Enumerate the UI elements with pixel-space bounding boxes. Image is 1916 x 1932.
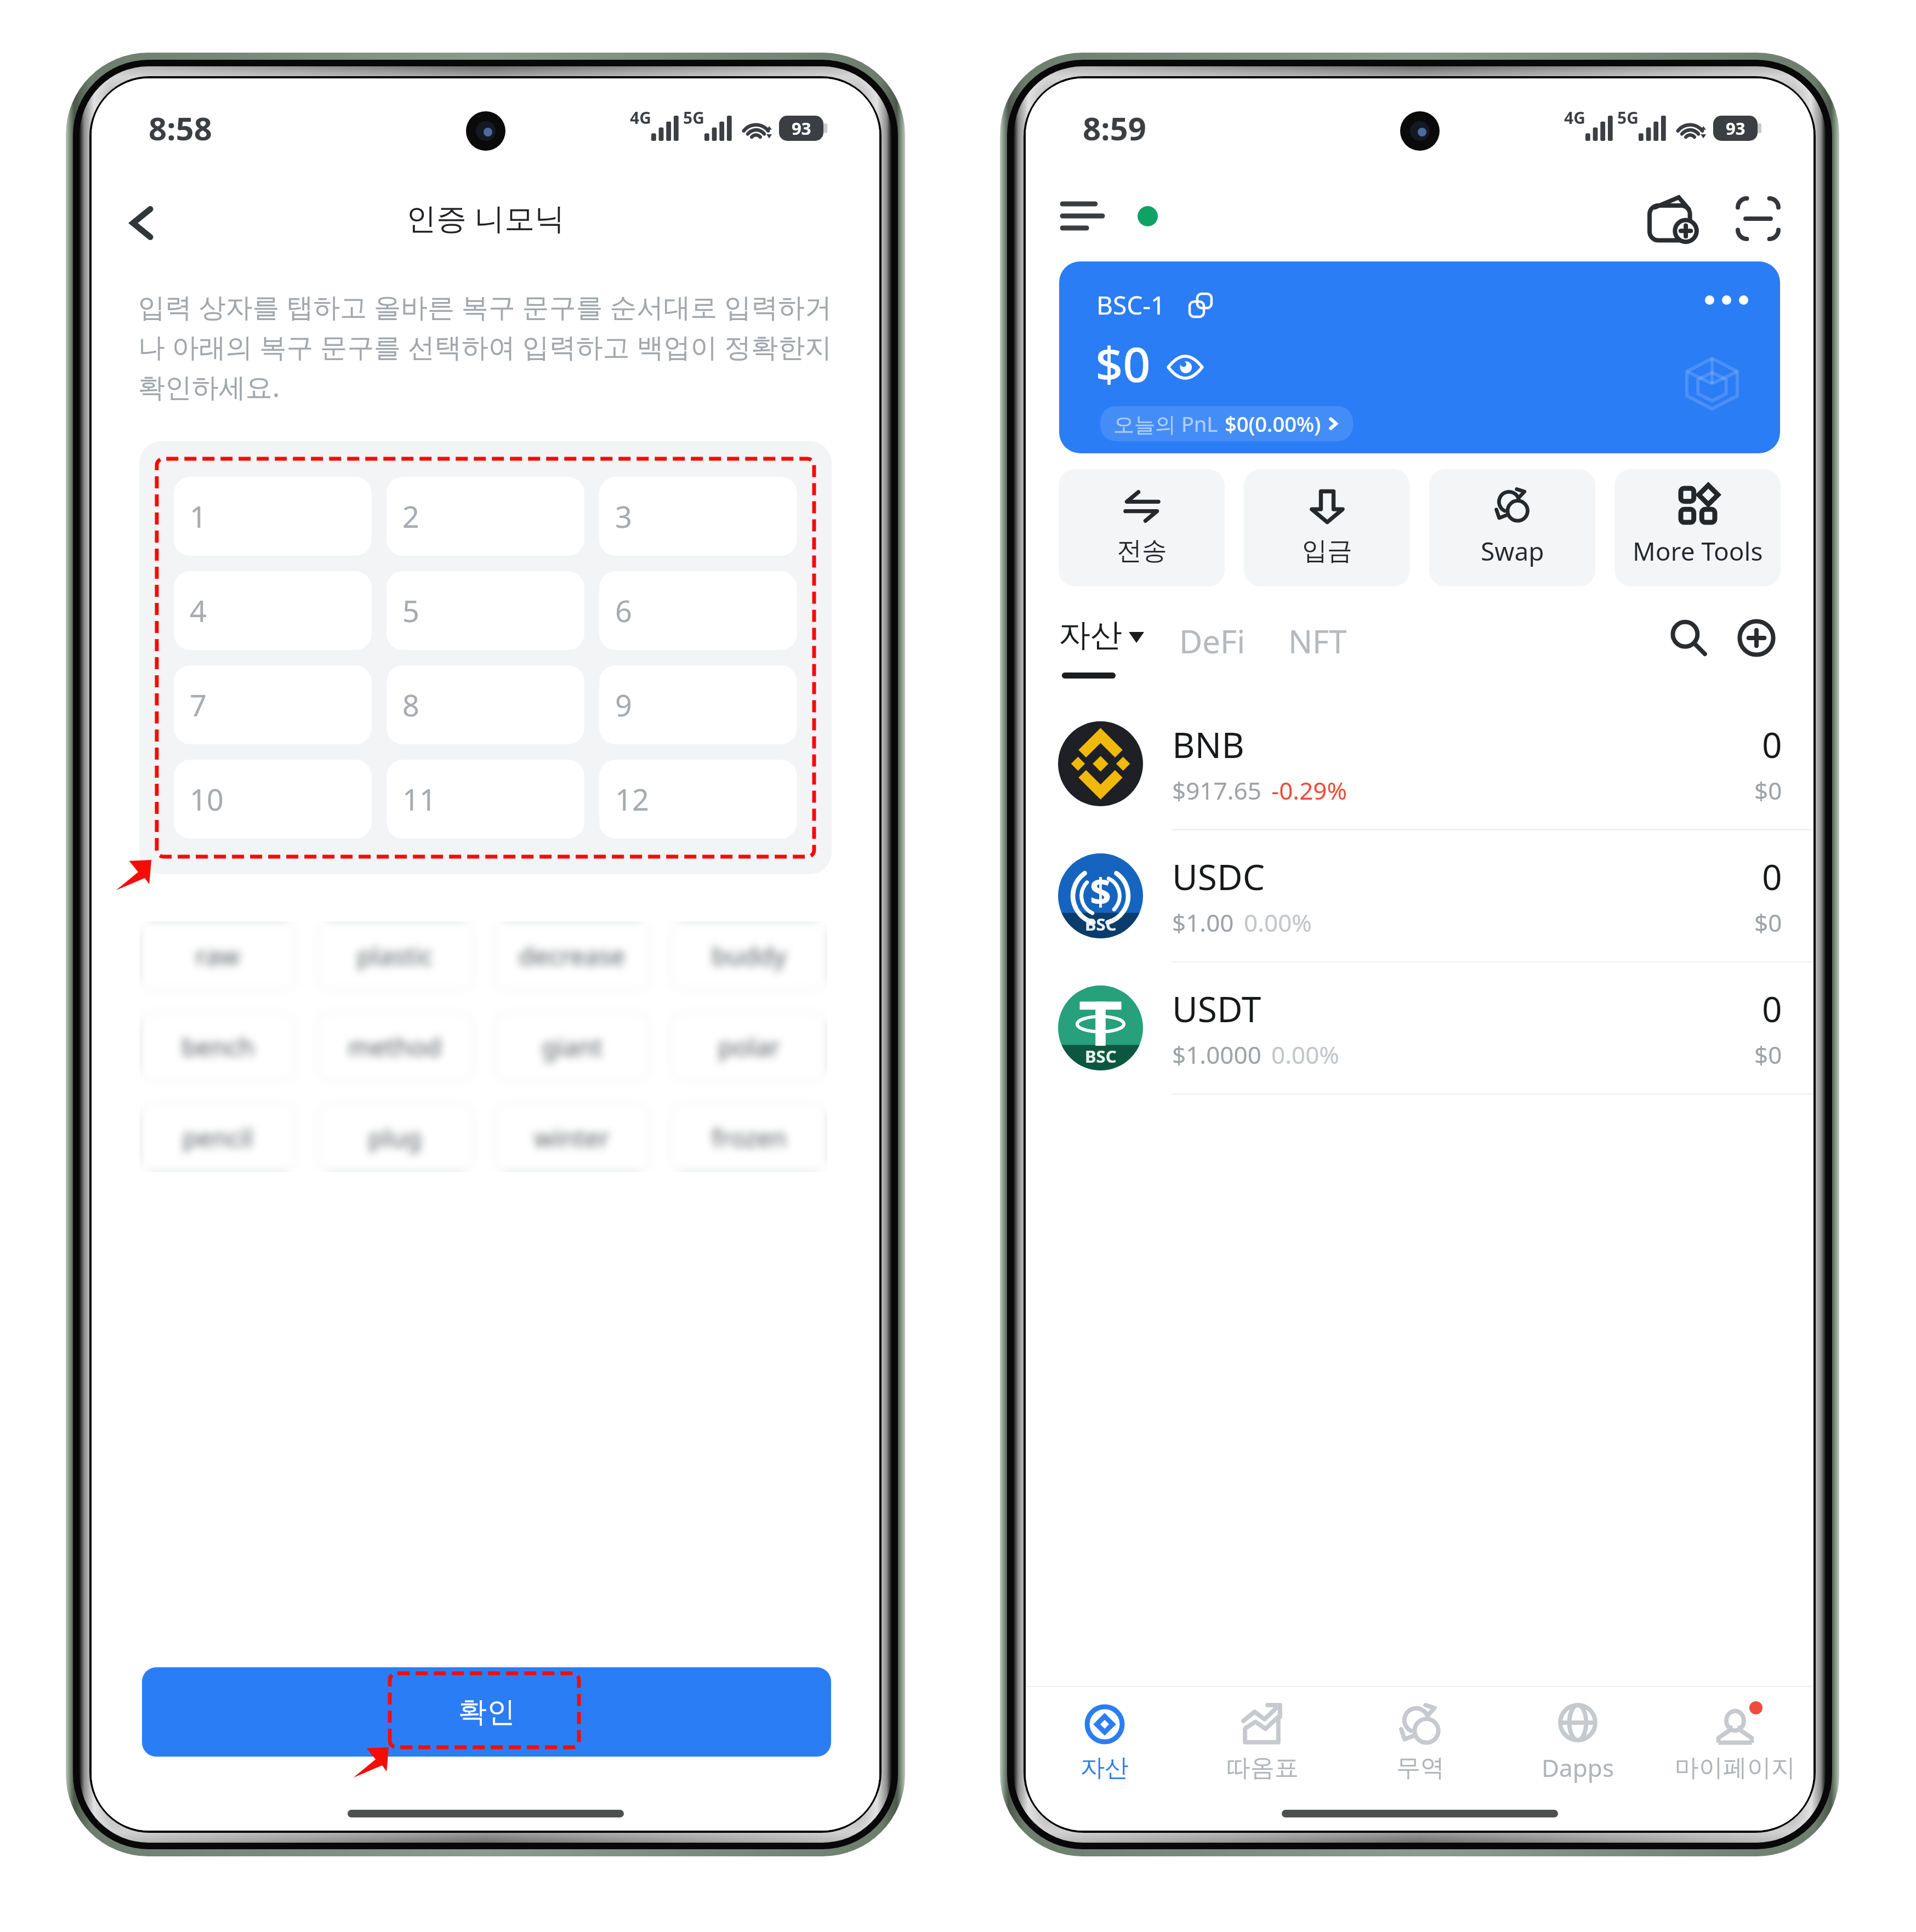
- button[interactable]: Dapps: [1499, 1687, 1656, 1799]
- button[interactable]: 1: [174, 477, 372, 556]
- staticText: frozen: [712, 1120, 787, 1155]
- button[interactable]: method: [317, 1012, 473, 1081]
- button[interactable]: 자산: [1026, 1687, 1184, 1799]
- button[interactable]: DeFi: [1179, 615, 1246, 667]
- staticText: 4: [190, 590, 207, 631]
- staticText: 11: [402, 779, 436, 819]
- button[interactable]: 무역: [1341, 1687, 1499, 1799]
- staticText: 10: [190, 779, 224, 819]
- staticText: 4G: [630, 106, 651, 129]
- staticText: 무역: [1396, 1753, 1445, 1783]
- staticText: 8: [402, 685, 419, 725]
- staticText: 입력 상자를 탭하고 올바른 복구 문구를 순서대로 입력하거나 아래의 복구 …: [138, 288, 845, 404]
- staticText: 전송: [1117, 535, 1167, 567]
- button[interactable]: 마이페이지: [1656, 1687, 1813, 1799]
- staticText: 1: [190, 496, 207, 537]
- staticText: 입금: [1302, 535, 1352, 567]
- button[interactable]: 10: [174, 760, 372, 839]
- button[interactable]: polar: [671, 1012, 827, 1081]
- staticText: 9: [615, 685, 632, 725]
- staticText: 인증 니모닉: [406, 197, 565, 238]
- button[interactable]: pencil: [140, 1103, 296, 1172]
- staticText: 93: [1726, 117, 1746, 140]
- staticText: 마이페이지: [1675, 1753, 1795, 1783]
- staticText: 7: [190, 685, 207, 725]
- staticText: 8:58: [149, 106, 212, 150]
- staticText: 93: [792, 117, 811, 140]
- button[interactable]: 따옴표: [1184, 1687, 1341, 1799]
- button[interactable]: buddy: [671, 921, 827, 990]
- button[interactable]: 2: [386, 477, 584, 556]
- staticText: BSC: [1085, 1045, 1117, 1068]
- button[interactable]: BSC-1: [1059, 261, 1780, 453]
- button[interactable]: 6: [599, 571, 797, 650]
- button[interactable]: Add wallet: [1644, 189, 1704, 249]
- button[interactable]: plug: [317, 1103, 473, 1172]
- staticText: 0: [1762, 985, 1782, 1033]
- button[interactable]: 3: [599, 477, 797, 556]
- button[interactable]: decrease: [494, 921, 650, 990]
- staticText: giant: [542, 1029, 602, 1064]
- staticText: 0.00%: [1244, 906, 1312, 939]
- button[interactable]: More Tools: [1614, 469, 1781, 586]
- button[interactable]: winter: [494, 1103, 650, 1172]
- staticText: 8:59: [1083, 106, 1146, 150]
- button[interactable]: 11: [386, 760, 584, 839]
- button[interactable]: Back: [112, 193, 172, 253]
- button[interactable]: Menu: [1060, 190, 1112, 242]
- staticText: 5G: [683, 106, 704, 129]
- staticText: BSC: [1085, 913, 1117, 936]
- button[interactable]: Swap: [1429, 469, 1595, 586]
- button[interactable]: BNB: [1026, 698, 1813, 829]
- button[interactable]: bench: [140, 1012, 296, 1081]
- button[interactable]: NFT: [1288, 615, 1347, 667]
- button[interactable]: Search: [1662, 612, 1715, 664]
- button[interactable]: raw: [140, 921, 296, 990]
- staticText: raw: [196, 938, 240, 973]
- button[interactable]: 12: [599, 760, 797, 839]
- button[interactable]: plastic: [317, 921, 473, 990]
- staticText: plug: [368, 1120, 422, 1155]
- staticText: -0.29%: [1271, 774, 1348, 807]
- staticText: 6: [615, 590, 632, 631]
- button[interactable]: frozen: [671, 1103, 827, 1172]
- staticText: 따옴표: [1226, 1753, 1299, 1783]
- button[interactable]: 7: [174, 665, 372, 744]
- button[interactable]: Add token: [1730, 612, 1783, 664]
- staticText: 5: [402, 590, 419, 631]
- staticText: $0: [1754, 906, 1782, 939]
- staticText: $1.00: [1172, 906, 1234, 939]
- staticText: buddy: [712, 938, 787, 973]
- staticText: USDC: [1172, 853, 1265, 901]
- button[interactable]: 확인: [142, 1667, 831, 1757]
- staticText: 자산: [1059, 615, 1122, 655]
- staticText: bench: [181, 1029, 255, 1064]
- button[interactable]: 입금: [1244, 469, 1410, 586]
- staticText: 자산: [1081, 1753, 1129, 1783]
- button[interactable]: Scan QR code: [1728, 189, 1788, 249]
- button[interactable]: 전송: [1059, 469, 1225, 586]
- staticText: BSC-1: [1096, 288, 1165, 322]
- button[interactable]: 9: [599, 665, 797, 744]
- button[interactable]: giant: [494, 1012, 650, 1081]
- staticText: $0: [1754, 1038, 1782, 1071]
- staticText: DeFi: [1179, 619, 1246, 663]
- button[interactable]: 5: [386, 571, 584, 650]
- button[interactable]: 8: [386, 665, 584, 744]
- staticText: BNB: [1172, 721, 1244, 768]
- staticText: $0: [1754, 774, 1782, 807]
- staticText: 오늘의 PnL: [1113, 409, 1218, 438]
- staticText: decrease: [519, 938, 626, 973]
- staticText: Swap: [1481, 534, 1544, 568]
- staticText: $0(0.00%): [1225, 409, 1321, 438]
- button[interactable]: BSC: [1026, 962, 1813, 1093]
- staticText: 확인: [458, 1694, 515, 1730]
- staticText: polar: [718, 1029, 780, 1064]
- staticText: winter: [534, 1120, 610, 1155]
- staticText: NFT: [1288, 619, 1347, 663]
- button[interactable]: 자산: [1059, 615, 1144, 679]
- button[interactable]: 4: [174, 571, 372, 650]
- button[interactable]: $: [1026, 830, 1813, 961]
- staticText: pencil: [183, 1120, 253, 1155]
- staticText: method: [348, 1029, 442, 1064]
